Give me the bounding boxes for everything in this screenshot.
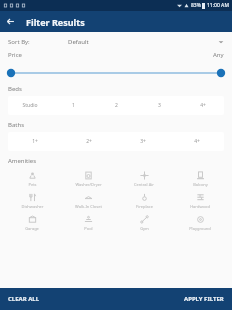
staticText: 83% bbox=[191, 2, 201, 9]
button[interactable]: Fireplace bbox=[116, 190, 172, 212]
button[interactable]: 2+ bbox=[62, 132, 116, 151]
button[interactable]: APPLY FILTER bbox=[116, 288, 232, 310]
button[interactable]: Gym bbox=[116, 212, 172, 234]
staticText: Fireplace bbox=[136, 204, 153, 209]
staticText: 11:00 AM bbox=[207, 2, 229, 9]
staticText: Any bbox=[213, 51, 224, 59]
button[interactable]: Back bbox=[0, 11, 21, 32]
staticText: Studio bbox=[22, 102, 38, 109]
staticText: Playground bbox=[189, 226, 211, 231]
staticText: 4+ bbox=[194, 138, 200, 145]
button[interactable]: 4+ bbox=[170, 132, 224, 151]
staticText: Price bbox=[8, 51, 22, 59]
staticText: Pets bbox=[28, 182, 37, 187]
staticText: Hardwood bbox=[190, 204, 210, 209]
button[interactable]: Central Air bbox=[116, 168, 172, 190]
button[interactable]: 1 bbox=[52, 96, 95, 115]
staticText: Sort By: bbox=[8, 38, 30, 46]
button[interactable]: Studio bbox=[8, 96, 52, 115]
button[interactable]: Dishwasher bbox=[4, 190, 60, 212]
button[interactable]: 1+ bbox=[8, 132, 62, 151]
staticText: APPLY FILTER bbox=[184, 295, 224, 303]
staticText: Balcony bbox=[193, 182, 208, 187]
staticText: 3 bbox=[158, 102, 161, 109]
button[interactable] bbox=[0, 68, 232, 78]
staticText: Gym bbox=[140, 226, 149, 231]
button[interactable]: Hardwood bbox=[172, 190, 228, 212]
button[interactable]: Walk-In Closet bbox=[60, 190, 116, 212]
staticText: 1 bbox=[72, 102, 75, 109]
button[interactable]: Pool bbox=[60, 212, 116, 234]
button[interactable]: 4+ bbox=[181, 96, 224, 115]
staticText: Central Air bbox=[134, 182, 154, 187]
button[interactable]: 3 bbox=[138, 96, 181, 115]
button[interactable]: Sort By: bbox=[0, 32, 232, 51]
staticText: 1+ bbox=[32, 138, 38, 145]
staticText: CLEAR ALL bbox=[8, 295, 40, 303]
staticText: Baths bbox=[8, 121, 25, 129]
staticText: 2+ bbox=[86, 138, 92, 145]
staticText: Washer/Dryer bbox=[75, 182, 102, 187]
staticText: Pool bbox=[84, 226, 93, 231]
staticText: 3+ bbox=[140, 138, 146, 145]
staticText: Beds bbox=[8, 85, 22, 93]
button[interactable]: Pets bbox=[4, 168, 60, 190]
button[interactable]: Playground bbox=[172, 212, 228, 234]
staticText: Amenities bbox=[8, 157, 37, 165]
staticText: Filter Results bbox=[26, 16, 85, 28]
staticText: 2 bbox=[115, 102, 118, 109]
button[interactable]: Balcony bbox=[172, 168, 228, 190]
button[interactable]: CLEAR ALL bbox=[0, 288, 116, 310]
staticText: Walk-In Closet bbox=[75, 204, 102, 209]
staticText: Dishwasher bbox=[21, 204, 44, 209]
button[interactable]: Washer/Dryer bbox=[60, 168, 116, 190]
staticText: Default bbox=[68, 38, 89, 46]
button[interactable]: Garage bbox=[4, 212, 60, 234]
staticText: 4+ bbox=[200, 102, 206, 109]
button[interactable]: 2 bbox=[95, 96, 138, 115]
staticText: Garage bbox=[25, 226, 39, 231]
button[interactable]: 3+ bbox=[116, 132, 170, 151]
